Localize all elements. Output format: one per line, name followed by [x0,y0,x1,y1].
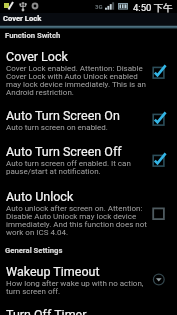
staticText: Turn Off Timer [6,307,87,315]
button[interactable]: Auto Unlock [0,182,177,243]
button[interactable]: Wakeup Timeout [0,257,177,300]
button[interactable]: Turn Off Timer [0,300,177,315]
staticText: Cover Lock [6,49,68,64]
staticText: Cover Lock enabled. Attention: Disable C… [6,64,147,97]
button[interactable]: Expand Wakeup Timeout [147,268,169,290]
button[interactable]: Enabled [147,149,169,171]
staticText: 3G [95,3,103,10]
button[interactable]: Enabled [147,61,169,83]
button[interactable]: Auto Turn Screen On [0,101,177,137]
staticText: Wakeup Timeout [6,264,100,279]
staticText: Auto Unlock [6,189,74,204]
button[interactable]: Enabled [147,108,169,130]
staticText: Auto unlock after screen on. Attention: … [6,204,147,237]
staticText: Auto turn screen on enabled. [6,123,108,132]
staticText: Auto Turn Screen On [6,108,120,123]
staticText: Cover Lock [3,14,42,23]
button[interactable]: Auto Turn Screen Off [0,137,177,182]
staticText: Function Switch [5,31,61,40]
staticText: Auto Turn Screen Off [6,144,122,159]
button[interactable]: Disabled [147,202,169,224]
staticText: 4:50 下午 [133,2,173,14]
button[interactable]: Cover Lock [0,42,177,101]
staticText: General Settings [5,246,63,255]
staticText: How long after wake up with no action, t… [6,279,147,296]
staticText: Auto turn screen off enabled. It can pau… [6,159,147,176]
